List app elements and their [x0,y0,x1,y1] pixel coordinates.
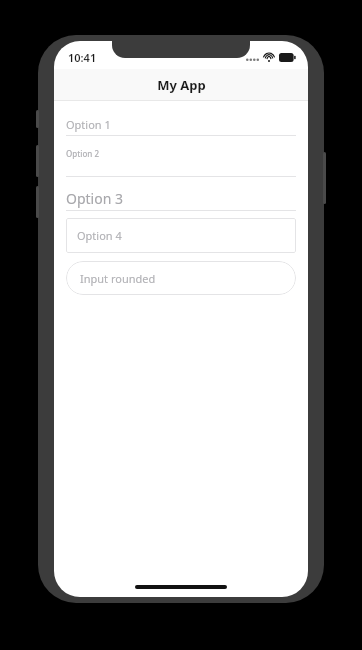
other: Notch [112,41,250,58]
staticText: Option 3 [66,189,123,208]
staticText: Option 4 [77,228,122,243]
button[interactable]: Option 3 [66,186,296,211]
staticText: My App [157,76,206,94]
button[interactable]: Input rounded [66,261,296,295]
staticText: Input rounded [80,271,156,286]
button[interactable]: Option 1 [66,114,296,136]
button[interactable]: Option 2 [66,145,296,177]
button[interactable]: Option 4 [66,218,296,253]
staticText: 10:41 [68,50,97,65]
staticText: Option 2 [66,148,100,159]
staticText: Option 1 [66,117,111,132]
